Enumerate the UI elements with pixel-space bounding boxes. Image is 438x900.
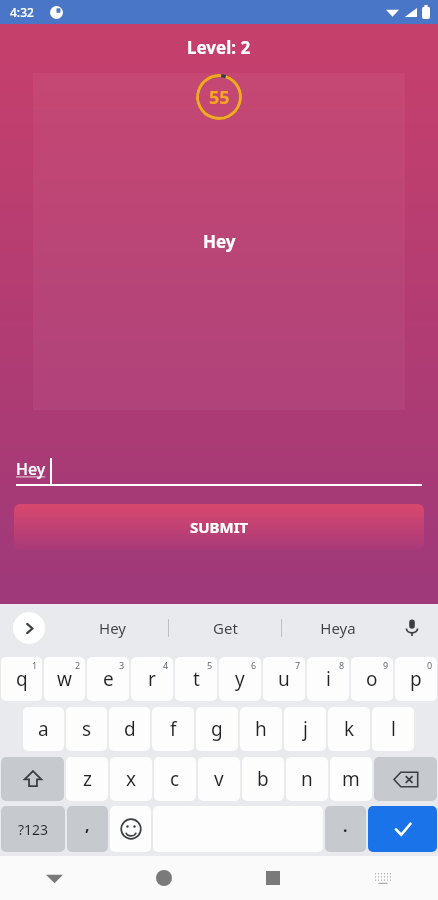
button[interactable]: w xyxy=(44,657,85,701)
button[interactable]: z xyxy=(66,757,108,801)
button[interactable]: t xyxy=(175,657,217,701)
button[interactable]: p xyxy=(395,657,437,701)
staticText: f xyxy=(170,716,177,742)
staticText: v xyxy=(214,766,224,792)
staticText: 0 xyxy=(427,659,433,671)
staticText: n xyxy=(301,766,313,792)
staticText: Heya xyxy=(320,618,356,638)
staticText: g xyxy=(211,716,223,742)
staticText: j xyxy=(303,716,308,742)
staticText: 2 xyxy=(75,659,81,671)
button[interactable]: Voice input xyxy=(400,616,424,640)
staticText: t xyxy=(193,666,200,692)
staticText: m xyxy=(342,766,360,792)
button[interactable]: Home xyxy=(109,856,218,900)
staticText: u xyxy=(278,666,290,692)
button[interactable]: Backspace xyxy=(374,757,437,801)
button[interactable]: j xyxy=(284,707,326,751)
button[interactable]: d xyxy=(109,707,150,751)
staticText: 9 xyxy=(383,659,389,671)
staticText: c xyxy=(170,766,180,792)
button[interactable]: Emoji xyxy=(110,806,151,852)
staticText: q xyxy=(16,666,28,692)
staticText: i xyxy=(326,666,331,692)
button[interactable]: n xyxy=(286,757,328,801)
button[interactable]: . xyxy=(325,806,366,852)
staticText: ?123 xyxy=(18,820,49,839)
staticText: Get xyxy=(213,618,238,638)
button[interactable]: Get xyxy=(169,604,281,652)
staticText: 4:32 xyxy=(10,4,34,20)
button[interactable]: r xyxy=(131,657,173,701)
button[interactable]: v xyxy=(198,757,240,801)
staticText: e xyxy=(103,666,114,692)
button[interactable]: , xyxy=(67,806,108,852)
button[interactable]: Shift xyxy=(1,757,64,801)
staticText: Hey xyxy=(16,458,46,480)
button[interactable]: f xyxy=(152,707,194,751)
button[interactable]: u xyxy=(263,657,305,701)
button[interactable]: l xyxy=(372,707,414,751)
staticText: w xyxy=(57,666,72,692)
staticText: a xyxy=(38,716,49,742)
staticText: 3 xyxy=(119,659,125,671)
button[interactable]: c xyxy=(154,757,196,801)
button[interactable]: Hide keyboard xyxy=(0,856,109,900)
staticText: d xyxy=(124,716,136,742)
button[interactable]: h xyxy=(240,707,282,751)
button[interactable]: SUBMIT xyxy=(14,504,424,550)
staticText: Hey xyxy=(203,230,236,253)
staticText: SUBMIT xyxy=(190,517,249,537)
staticText: 5 xyxy=(207,659,213,671)
staticText: . xyxy=(343,815,348,837)
staticText: Level: 2 xyxy=(187,36,251,59)
staticText: y xyxy=(235,666,245,692)
staticText: 8 xyxy=(339,659,345,671)
staticText: 4 xyxy=(163,659,169,671)
staticText: 6 xyxy=(251,659,257,671)
staticText: , xyxy=(85,814,90,836)
staticText: s xyxy=(82,716,92,742)
button[interactable]: e xyxy=(87,657,129,701)
button[interactable]: g xyxy=(196,707,238,751)
button[interactable]: More suggestions xyxy=(13,612,45,644)
staticText: p xyxy=(410,666,422,692)
staticText: Hey xyxy=(99,618,126,638)
staticText: k xyxy=(344,716,355,742)
button[interactable]: Enter xyxy=(368,806,437,852)
staticText: x xyxy=(126,766,137,792)
button[interactable]: Heya xyxy=(282,604,394,652)
button[interactable]: k xyxy=(328,707,370,751)
staticText: z xyxy=(83,766,92,792)
staticText: 55 xyxy=(209,85,230,110)
button[interactable]: s xyxy=(66,707,107,751)
staticText: l xyxy=(391,716,396,742)
button[interactable]: o xyxy=(351,657,393,701)
button[interactable]: Hey xyxy=(56,604,168,652)
staticText: o xyxy=(366,666,378,692)
staticText: h xyxy=(255,716,267,742)
button[interactable]: ?123 xyxy=(1,806,65,852)
staticText: 1 xyxy=(32,659,38,671)
button[interactable]: Recents xyxy=(218,856,328,900)
button[interactable]: i xyxy=(307,657,349,701)
staticText: 7 xyxy=(295,659,301,671)
button[interactable]: y xyxy=(219,657,261,701)
button[interactable]: x xyxy=(110,757,152,801)
button[interactable]: q xyxy=(1,657,42,701)
button[interactable]: b xyxy=(242,757,284,801)
button[interactable]: Switch keyboard xyxy=(328,856,438,900)
button[interactable]: a xyxy=(23,707,64,751)
staticText: b xyxy=(257,766,269,792)
staticText: r xyxy=(148,666,156,692)
button[interactable]: m xyxy=(330,757,372,801)
